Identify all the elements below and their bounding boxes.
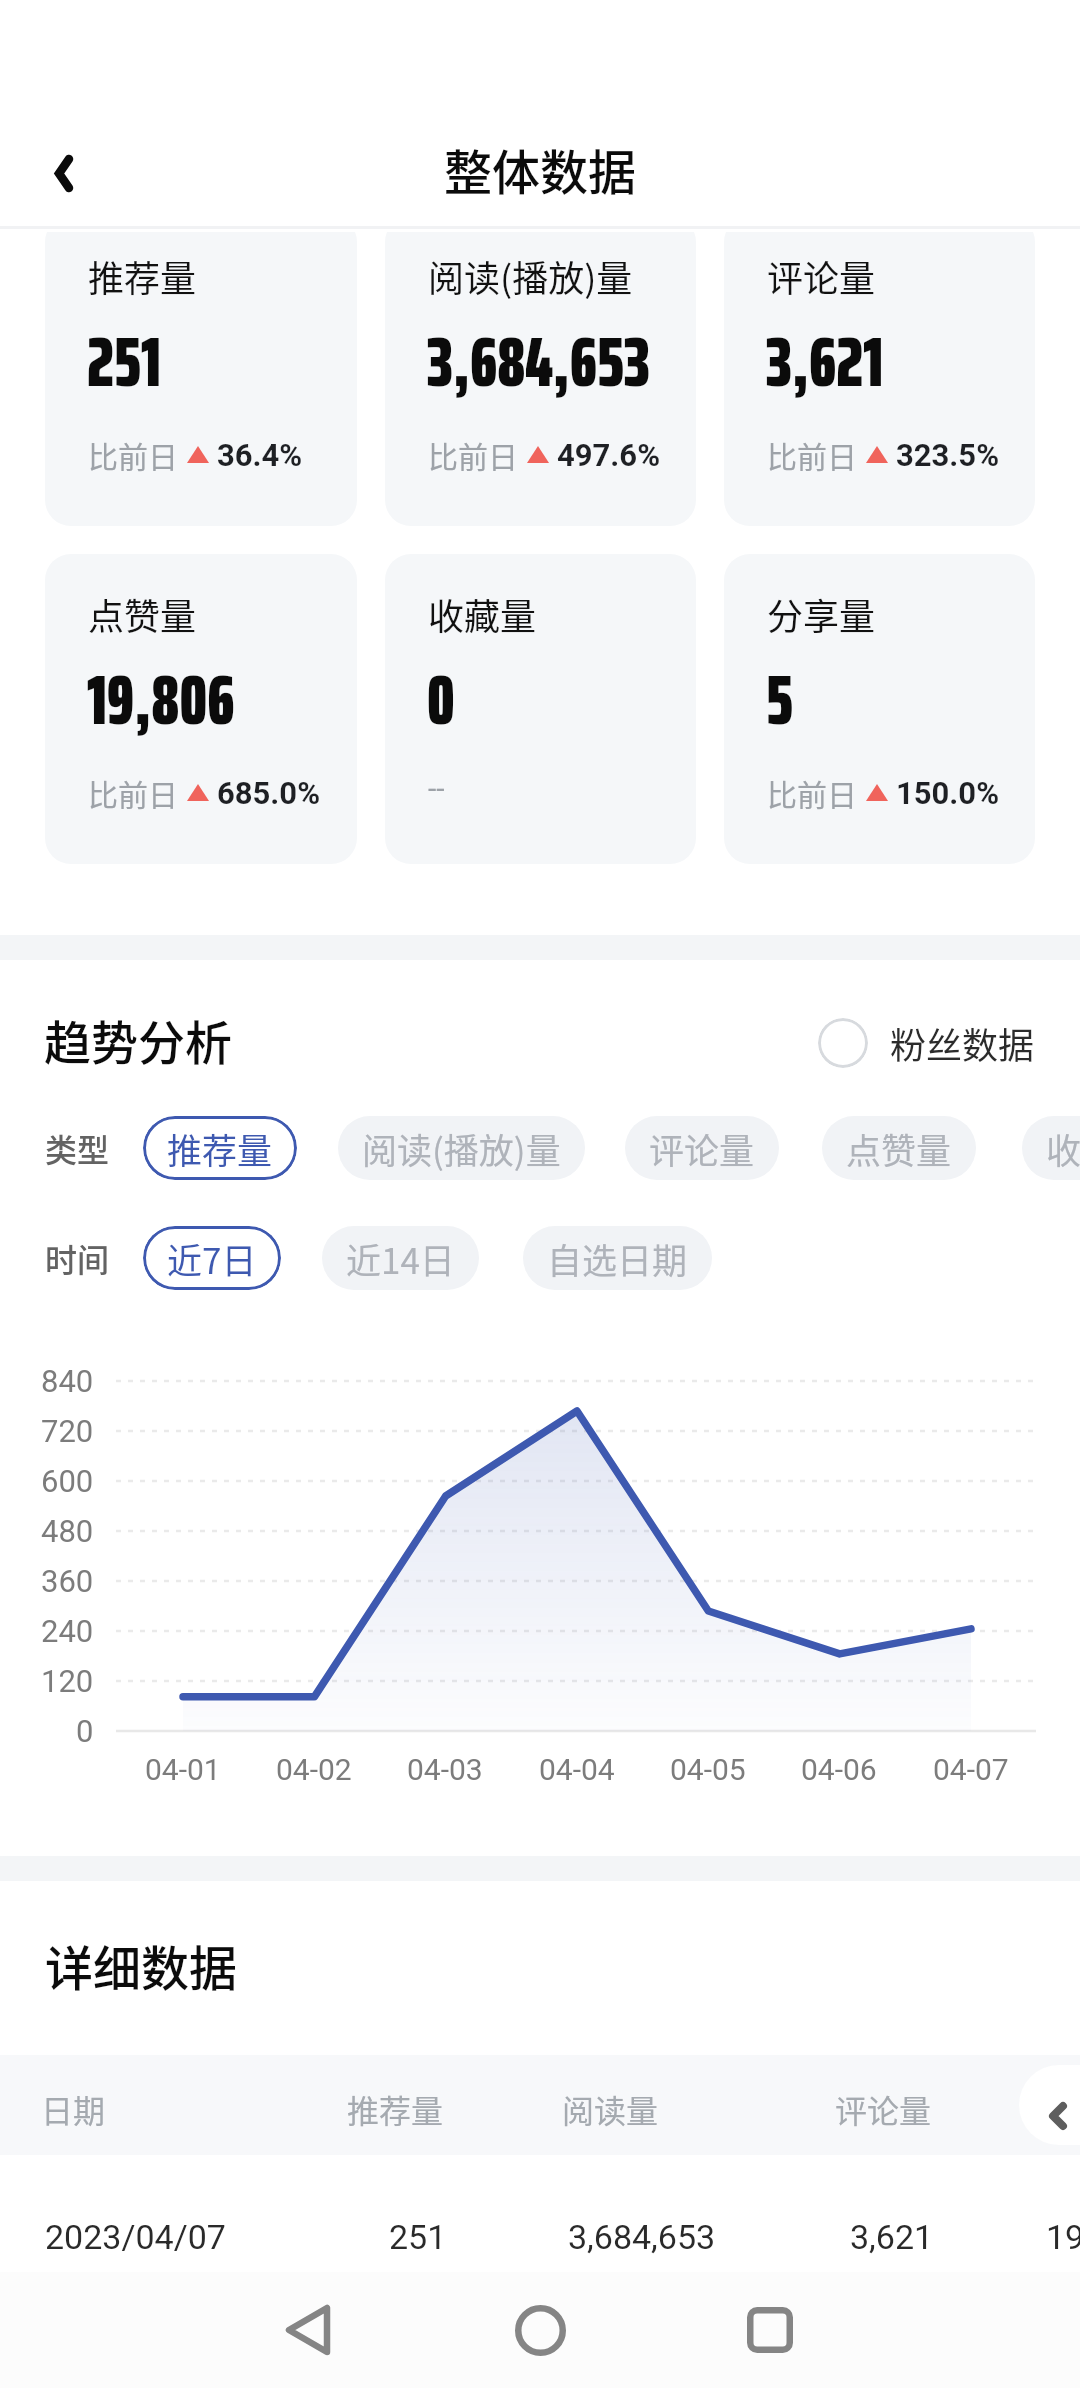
staticText: 比前日 <box>88 771 178 814</box>
staticText: 0 <box>76 1713 94 1749</box>
staticText: 推荐量 <box>347 2086 444 2132</box>
button[interactable]: Back <box>248 2272 368 2388</box>
staticText: 比前日 <box>767 433 857 476</box>
staticText: 323.5% <box>896 437 1000 473</box>
button[interactable]: 推荐量 <box>143 1116 297 1180</box>
button[interactable]: 阅读(播放)量 <box>385 232 696 526</box>
staticText: 比前日 <box>428 433 518 476</box>
staticText: 04-03 <box>407 1752 483 1787</box>
staticText: 150.0% <box>896 775 1000 811</box>
staticText: 类型 <box>45 1125 110 1171</box>
staticText: 近14日 <box>346 1233 455 1284</box>
staticText: 阅读(播放)量 <box>362 1123 561 1174</box>
staticText: 36.4% <box>217 437 303 473</box>
staticText: 3,621 <box>850 2217 934 2257</box>
staticText: 比前日 <box>767 771 857 814</box>
staticText: 粉丝数据 <box>890 1017 1035 1069</box>
staticText: 评论量 <box>835 2086 932 2132</box>
staticText: 日期 <box>41 2086 106 2132</box>
button[interactable]: 2023/04/07 <box>0 2155 1080 2278</box>
button[interactable]: 分享量 <box>724 554 1035 864</box>
staticText: 整体数据 <box>444 134 637 204</box>
staticText: 点赞量 <box>88 588 197 640</box>
staticText: 比前日 <box>88 433 178 476</box>
staticText: 近7日 <box>167 1233 257 1284</box>
staticText: 阅读量 <box>562 2086 659 2132</box>
button[interactable]: 评论量 <box>625 1116 779 1180</box>
button[interactable]: Recents <box>710 2272 830 2388</box>
staticText: 251 <box>87 307 162 417</box>
staticText: 点赞量 <box>846 1123 952 1174</box>
button[interactable]: 点赞量 <box>822 1116 976 1180</box>
staticText: 推荐量 <box>88 250 197 302</box>
staticText: 04-07 <box>933 1752 1009 1787</box>
staticText: 3,684,653 <box>427 307 650 417</box>
staticText: 685.0% <box>217 775 321 811</box>
staticText: 720 <box>41 1413 94 1449</box>
staticText: 评论量 <box>649 1123 755 1174</box>
staticText: 840 <box>41 1363 94 1399</box>
staticText: 推荐量 <box>167 1123 273 1174</box>
staticText: 240 <box>41 1613 94 1649</box>
staticText: 19,806 <box>87 645 235 755</box>
button[interactable]: 推荐量 <box>45 232 357 526</box>
button[interactable]: 评论量 <box>724 232 1035 526</box>
staticText: 3,621 <box>766 307 884 417</box>
staticText: 04-05 <box>670 1752 746 1787</box>
button[interactable]: 近14日 <box>322 1226 479 1290</box>
staticText: 详细数据 <box>45 1930 238 2000</box>
staticText: 04-04 <box>539 1752 615 1787</box>
button[interactable]: Previous columns <box>1019 2065 1080 2145</box>
staticText: 分享量 <box>767 588 876 640</box>
button[interactable]: 自选日期 <box>523 1226 712 1290</box>
button[interactable]: 收藏量 <box>1022 1116 1080 1180</box>
button[interactable]: 点赞量 <box>45 554 357 864</box>
staticText: 时间 <box>45 1235 110 1281</box>
staticText: 497.6% <box>557 437 661 473</box>
staticText: 评论量 <box>767 250 876 302</box>
staticText: -- <box>428 771 445 806</box>
button[interactable]: 收藏量 <box>385 554 696 864</box>
staticText: 收藏量 <box>1046 1123 1080 1174</box>
staticText: 5 <box>766 645 794 755</box>
button[interactable]: Back <box>19 128 109 218</box>
staticText: 04-06 <box>801 1752 877 1787</box>
button[interactable]: 阅读(播放)量 <box>338 1116 585 1180</box>
button[interactable]: 粉丝数据 <box>818 1017 1037 1069</box>
staticText: 19,8 <box>1046 2217 1080 2257</box>
staticText: 360 <box>41 1563 94 1599</box>
staticText: 2023/04/07 <box>45 2217 226 2257</box>
staticText: 3,684,653 <box>568 2217 716 2257</box>
button[interactable]: 近7日 <box>143 1226 281 1290</box>
staticText: 收藏量 <box>428 588 537 640</box>
staticText: 600 <box>41 1463 94 1499</box>
staticText: 04-02 <box>276 1752 352 1787</box>
staticText: 自选日期 <box>547 1233 688 1284</box>
staticText: 251 <box>389 2217 447 2257</box>
staticText: 阅读(播放)量 <box>428 250 633 302</box>
staticText: 0 <box>427 645 455 755</box>
staticText: 120 <box>41 1663 94 1699</box>
staticText: 04-01 <box>145 1752 221 1787</box>
staticText: 趋势分析 <box>44 1005 232 1073</box>
staticText: 480 <box>41 1513 94 1549</box>
button[interactable]: Home <box>480 2272 600 2388</box>
